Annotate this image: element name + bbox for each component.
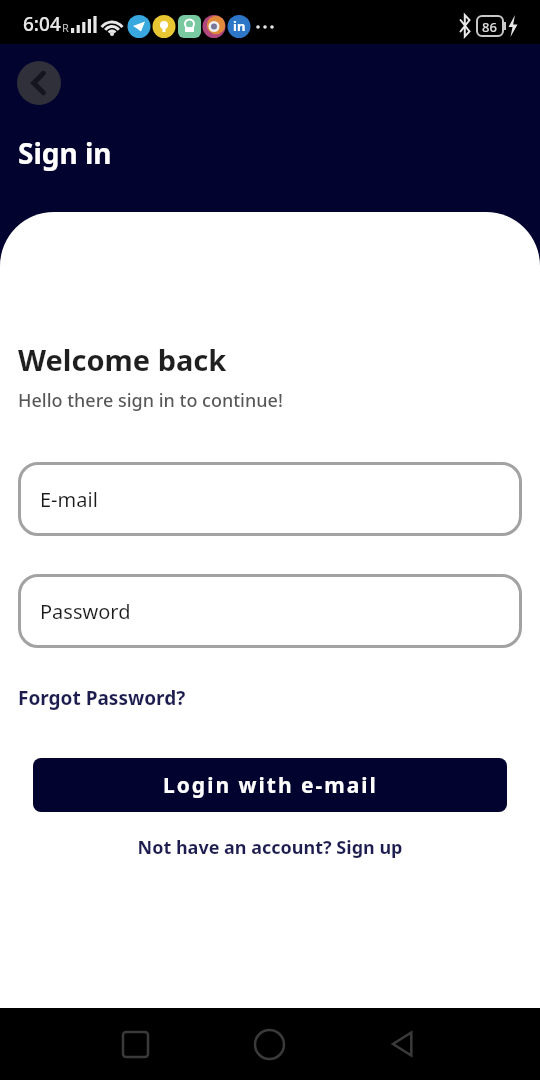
staticText: Sign in [18,134,112,172]
staticText: Welcome back [18,340,227,379]
button[interactable]: Password [18,574,522,648]
staticText: R [62,20,69,35]
staticText: in [233,17,246,35]
staticText: Password [40,598,131,625]
button[interactable] [105,1014,165,1074]
button[interactable] [239,1014,299,1074]
staticText: Hello there sign in to continue! [18,388,283,413]
staticText: 86 [482,18,497,36]
staticText: 6:04 [23,11,61,37]
staticText: E-mail [40,486,98,513]
button[interactable]: E-mail [18,462,522,536]
button[interactable]: Login with e-mail [33,758,507,812]
button[interactable]: Not have an account? Sign up [0,835,540,860]
button[interactable]: Forgot Password? [18,685,186,711]
button[interactable] [373,1014,433,1074]
button[interactable] [17,61,61,105]
staticText: Login with e-mail [163,771,378,800]
